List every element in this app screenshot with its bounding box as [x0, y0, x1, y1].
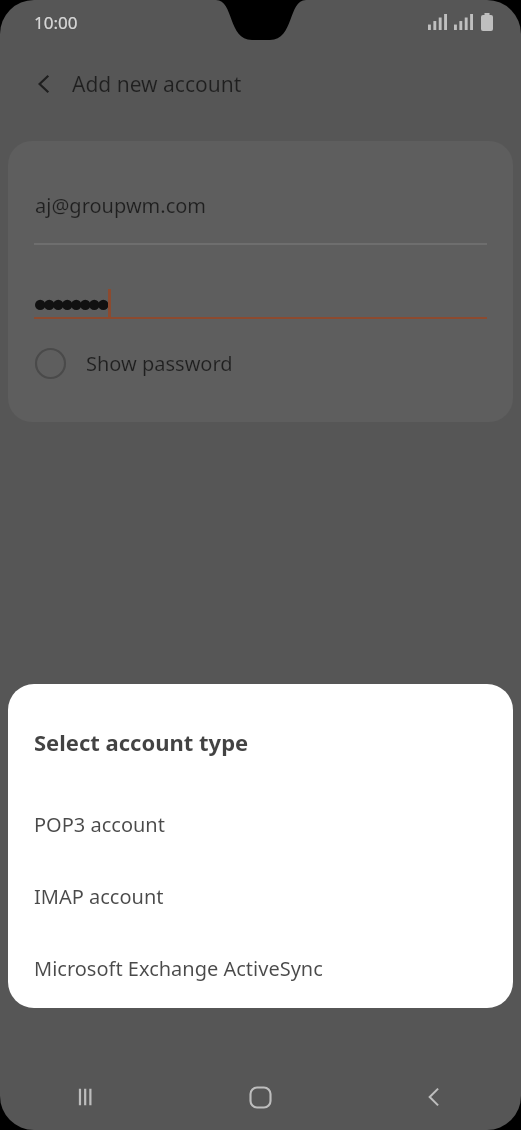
staticText: Add new account [72, 70, 242, 99]
button[interactable]: aj@groupwm.com [8, 185, 513, 245]
staticText: Select account type [34, 727, 249, 757]
button[interactable]: Show password [8, 337, 513, 389]
staticText: POP3 account [34, 811, 165, 838]
button[interactable]: Microsoft Exchange ActiveSync [8, 932, 513, 1004]
button[interactable]: POP3 account [8, 788, 513, 860]
button[interactable]: IMAP account [8, 860, 513, 932]
button[interactable]: Recent apps [0, 1064, 173, 1130]
staticText: IMAP account [34, 883, 164, 910]
staticText: Microsoft Exchange ActiveSync [34, 955, 323, 982]
staticText: aj@groupwm.com [35, 192, 207, 219]
staticText: Show password [86, 350, 233, 377]
button[interactable]: Back [22, 62, 66, 106]
button[interactable]: Back [347, 1064, 521, 1130]
button[interactable] [8, 281, 513, 319]
staticText: 10:00 [34, 11, 78, 34]
button[interactable]: Home [173, 1064, 347, 1130]
